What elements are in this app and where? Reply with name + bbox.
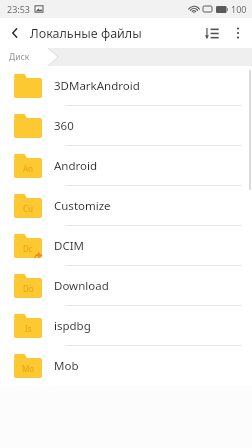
button[interactable]: Cu	[0, 186, 252, 226]
button[interactable]: Back	[0, 18, 30, 48]
staticText: Локальные файлы	[30, 25, 198, 42]
staticText: Android	[54, 158, 98, 174]
button[interactable]: Sort	[198, 18, 226, 48]
staticText: Do	[23, 283, 34, 294]
staticText: An	[23, 163, 34, 174]
button[interactable]: An	[0, 146, 252, 186]
button[interactable]: Диск	[0, 48, 48, 66]
button[interactable]: 3DMarkAndroid	[0, 66, 252, 106]
staticText: Mo	[22, 363, 35, 374]
staticText: 100	[231, 3, 247, 15]
staticText: 3DMarkAndroid	[54, 78, 140, 94]
staticText: 23:53	[7, 3, 31, 15]
staticText: Mob	[54, 358, 79, 374]
button[interactable]: Is	[0, 306, 252, 346]
staticText: DCIM	[54, 238, 84, 254]
staticText: 360	[54, 118, 74, 134]
staticText: ispdbg	[54, 318, 91, 334]
staticText: Is	[25, 323, 32, 334]
staticText: Cu	[23, 203, 33, 214]
staticText: Dc	[23, 243, 33, 254]
button[interactable]: More options	[226, 18, 250, 48]
staticText: Диск	[9, 51, 30, 63]
staticText: Download	[54, 278, 109, 294]
staticText: Customize	[54, 198, 111, 214]
button[interactable]: 360	[0, 106, 252, 146]
button[interactable]: Mo	[0, 346, 252, 386]
button[interactable]: Do	[0, 266, 252, 306]
button[interactable]: Dc	[0, 226, 252, 266]
